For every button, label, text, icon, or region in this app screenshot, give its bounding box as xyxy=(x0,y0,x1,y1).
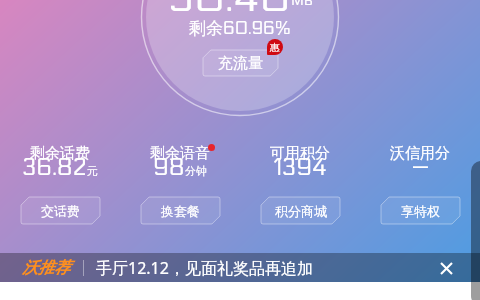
button[interactable]: 充流量 xyxy=(203,50,278,76)
staticText: 充流量 xyxy=(218,54,263,73)
button[interactable]: 积分商城 xyxy=(261,197,340,224)
staticText: 50.40 xyxy=(168,0,291,22)
staticText: — xyxy=(413,154,428,181)
button[interactable]: 换套餐 xyxy=(141,197,220,224)
staticText: 惠 xyxy=(270,41,280,54)
staticText: 36.82 xyxy=(22,154,87,181)
staticText: 分钟 xyxy=(185,164,207,178)
staticText: 可用积分 xyxy=(270,144,330,163)
button[interactable]: Close xyxy=(435,257,457,279)
button[interactable]: 交话费 xyxy=(21,197,100,224)
staticText: 积分商城 xyxy=(275,203,327,219)
staticText: 1394 xyxy=(273,154,327,181)
staticText: 沃推荐 xyxy=(22,258,70,278)
staticText: 交话费 xyxy=(41,203,80,219)
button[interactable]: 享特权 xyxy=(381,197,460,224)
staticText: 换套餐 xyxy=(161,203,200,219)
staticText: 剩余话费 xyxy=(30,144,90,163)
staticText: 享特权 xyxy=(401,203,440,219)
button[interactable]: Side panel xyxy=(471,161,480,300)
staticText: 元 xyxy=(87,164,98,178)
staticText: 手厅12.12，见面礼奖品再追加 xyxy=(96,257,435,279)
staticText: 98 xyxy=(153,154,185,181)
staticText: MB xyxy=(291,0,313,9)
staticText: 沃信用分 xyxy=(390,144,450,163)
staticText: 剩余60.96% xyxy=(189,18,291,39)
staticText: 剩余语音 xyxy=(150,144,210,163)
